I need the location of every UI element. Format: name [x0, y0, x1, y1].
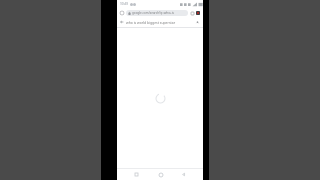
- button[interactable]: Tabs: [189, 10, 195, 16]
- button[interactable]: Account: [195, 20, 200, 25]
- button[interactable]: Home: [156, 170, 165, 179]
- staticText: 10:49: [120, 2, 129, 6]
- button[interactable]: Recent apps: [132, 170, 141, 179]
- button[interactable]: Back: [117, 17, 203, 27]
- staticText: google.com/search?q=who+is: [132, 11, 174, 15]
- other: Back: [120, 20, 124, 24]
- button[interactable]: google.com/search?q=who+is: [126, 10, 188, 16]
- button[interactable]: Home: [119, 10, 125, 16]
- button[interactable]: Back: [179, 170, 188, 179]
- button[interactable]: More options: [195, 10, 201, 16]
- staticText: who is world biggest superstar: [126, 20, 193, 25]
